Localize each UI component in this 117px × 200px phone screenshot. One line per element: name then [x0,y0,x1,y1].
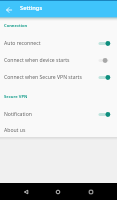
button[interactable]: Recents [84,185,97,198]
staticText: Notification [4,111,32,118]
staticText: Connect when device starts [4,57,70,64]
staticText: Connect when Secure VPN starts [4,74,82,81]
staticText: Secure VPN [4,94,28,100]
button[interactable]: On [97,39,110,48]
button[interactable]: Connect when device starts [0,52,117,69]
staticText: Settings [20,4,43,12]
button[interactable]: Notification [0,106,117,123]
button[interactable]: Back [19,185,32,198]
button[interactable]: On [97,73,110,82]
button[interactable]: Back [3,4,15,16]
button[interactable]: About us [0,122,117,139]
button[interactable]: Connect when Secure VPN starts [0,69,117,86]
button[interactable]: Off [97,56,110,65]
button[interactable]: Home [51,185,64,198]
staticText: Connection [4,23,28,29]
button[interactable]: On [97,110,110,119]
staticText: Auto reconnect [4,40,41,47]
button[interactable]: Auto reconnect [0,35,117,52]
staticText: About us [4,127,26,134]
